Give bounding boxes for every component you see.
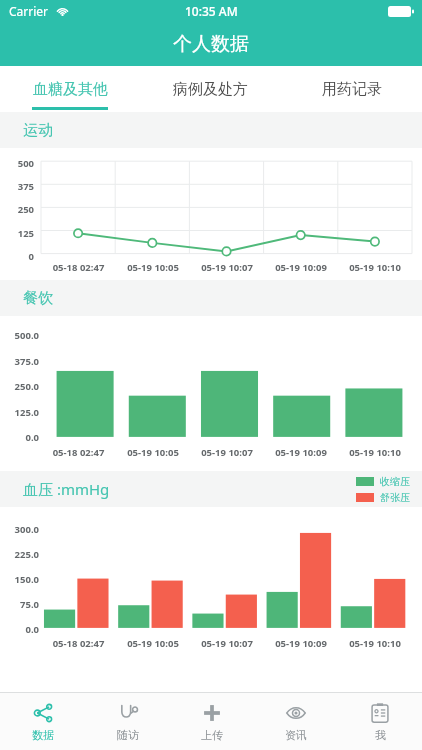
staticText: 05-19 10:07 <box>190 261 264 274</box>
staticText: 收缩压 <box>380 475 410 488</box>
staticText: 05-18 02:47 <box>41 446 116 459</box>
staticText: 资讯 <box>285 728 307 742</box>
staticText: 05-19 10:09 <box>264 637 338 650</box>
staticText: 05-19 10:10 <box>338 446 412 459</box>
staticText: 0.0 <box>0 431 39 444</box>
staticText: 75.0 <box>0 598 39 611</box>
staticText: 500 <box>0 157 34 170</box>
staticText: 150.0 <box>0 573 39 586</box>
staticText: 随访 <box>117 728 139 742</box>
staticText: 05-19 10:05 <box>116 261 190 274</box>
staticText: 125 <box>0 227 34 240</box>
staticText: 血压 :mmHg <box>23 479 110 499</box>
staticText: 05-19 10:10 <box>338 637 412 650</box>
staticText: 300.0 <box>0 523 39 536</box>
staticText: 250.0 <box>0 380 39 393</box>
staticText: 0.0 <box>0 623 39 636</box>
staticText: 餐饮 <box>23 289 53 308</box>
staticText: 500.0 <box>0 329 39 342</box>
button[interactable]: 用药记录 <box>281 66 422 112</box>
staticText: 运动 <box>23 121 53 140</box>
staticText: 05-18 02:47 <box>41 261 116 274</box>
staticText: 05-18 02:47 <box>41 637 116 650</box>
staticText: 05-19 10:07 <box>190 637 264 650</box>
staticText: 125.0 <box>0 406 39 419</box>
button[interactable]: 资讯 <box>254 693 338 750</box>
staticText: Carrier <box>9 3 49 19</box>
button[interactable]: 血糖及其他 <box>0 66 140 112</box>
staticText: 375 <box>0 180 34 193</box>
staticText: 上传 <box>201 728 223 742</box>
button[interactable]: 病例及处方 <box>140 66 281 112</box>
staticText: 血糖及其他 <box>33 80 108 99</box>
staticText: 病例及处方 <box>173 80 248 99</box>
staticText: 05-19 10:05 <box>116 637 190 650</box>
staticText: 舒张压 <box>380 491 410 504</box>
staticText: 0 <box>0 250 34 263</box>
staticText: 数据 <box>32 728 54 742</box>
button[interactable]: 我 <box>338 693 422 750</box>
staticText: 225.0 <box>0 548 39 561</box>
staticText: 05-19 10:09 <box>264 446 338 459</box>
button[interactable]: 上传 <box>170 693 254 750</box>
staticText: 我 <box>375 728 386 742</box>
staticText: 10:35 AM <box>185 3 238 19</box>
staticText: 个人数据 <box>173 32 249 56</box>
staticText: 05-19 10:05 <box>116 446 190 459</box>
button[interactable]: 数据 <box>0 693 85 750</box>
staticText: 05-19 10:09 <box>264 261 338 274</box>
staticText: 用药记录 <box>322 80 382 99</box>
staticText: 05-19 10:10 <box>338 261 412 274</box>
staticText: 05-19 10:07 <box>190 446 264 459</box>
button[interactable]: 随访 <box>85 693 170 750</box>
staticText: 250 <box>0 203 34 216</box>
staticText: 375.0 <box>0 355 39 368</box>
